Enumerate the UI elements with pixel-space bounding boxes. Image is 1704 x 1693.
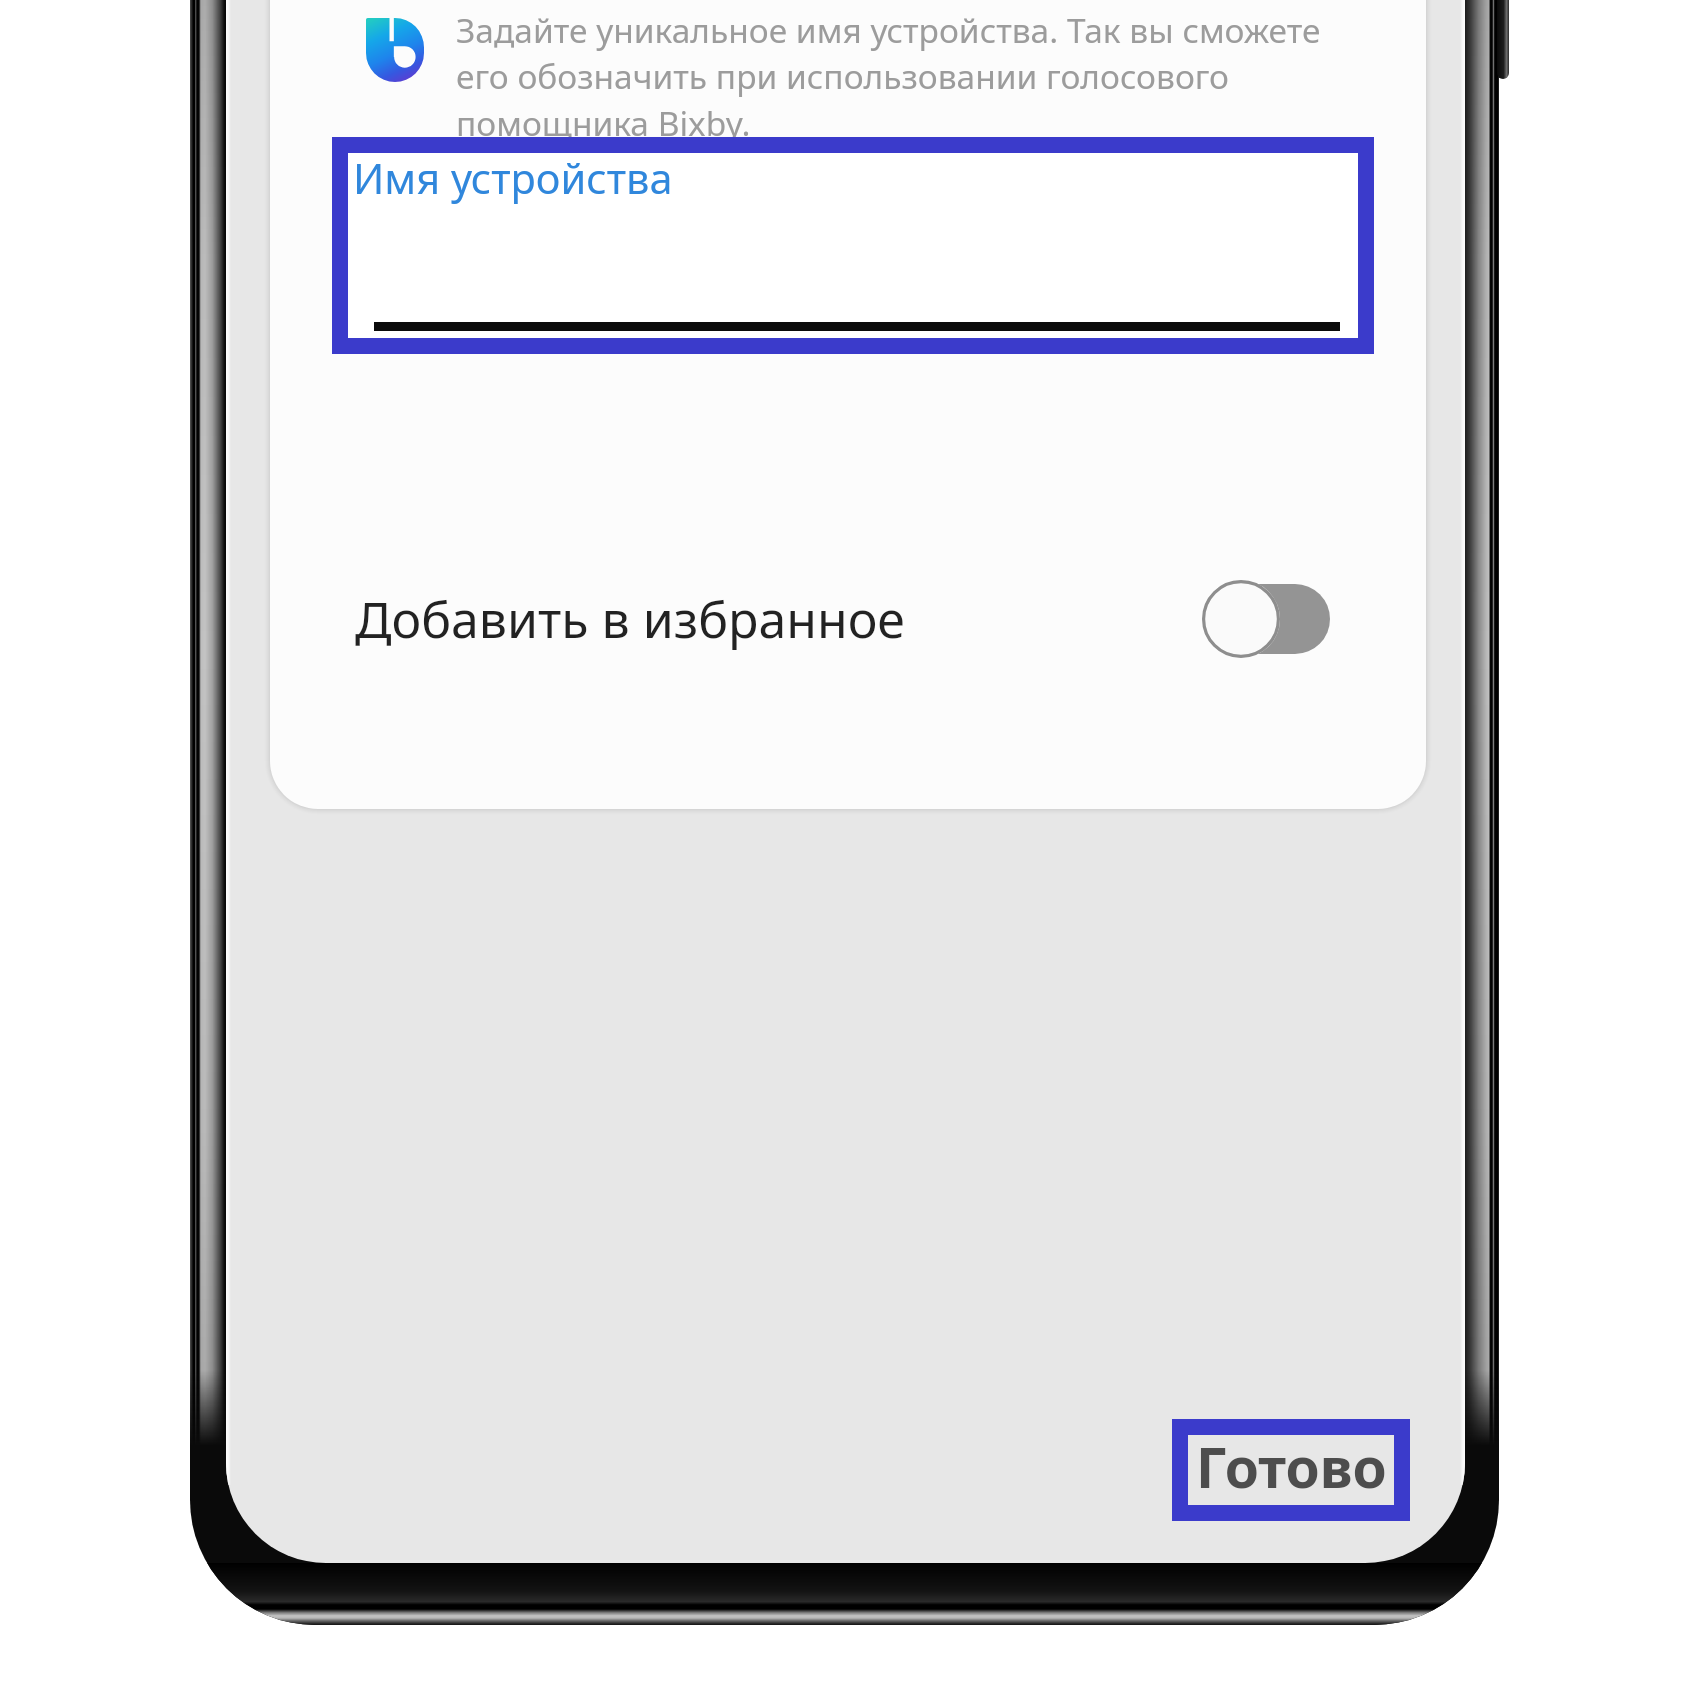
staticText: Готово [1196, 1429, 1387, 1499]
staticText: Добавить в избранное [355, 585, 905, 653]
button[interactable]: Готово [1188, 1435, 1394, 1505]
staticText: Задайте уникальное имя устройства. Так в… [456, 7, 1340, 146]
other: Bixby [366, 18, 424, 82]
button[interactable]: Имя устройства [348, 153, 1358, 338]
button[interactable]: Добавить в избранное, выключено [1202, 578, 1330, 660]
staticText: Имя устройства [353, 150, 673, 207]
button[interactable]: Добавить в избранное [270, 542, 1426, 696]
